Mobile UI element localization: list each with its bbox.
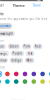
button[interactable]: Colour swatch xyxy=(0,71,2,77)
button[interactable]: Colour swatch xyxy=(31,78,37,85)
button[interactable]: Orange xyxy=(0,51,9,56)
button[interactable]: Indigo xyxy=(10,58,23,63)
staticText: ▮▮▮ xyxy=(37,0,40,1)
button[interactable]: Colour swatch xyxy=(4,71,11,77)
button[interactable]: Colour swatch xyxy=(4,78,11,85)
staticText: Green xyxy=(9,45,18,48)
button[interactable]: Colour swatch xyxy=(13,78,19,85)
staticText: Teal xyxy=(28,52,33,55)
staticText: Indigo xyxy=(11,59,21,62)
staticText: Yellow xyxy=(0,59,6,62)
staticText: Orange xyxy=(0,52,7,55)
staticText: Theme xyxy=(12,3,24,8)
button[interactable]: Colour swatch xyxy=(0,78,2,85)
staticText: Accent xyxy=(0,39,4,42)
button[interactable]: Purple xyxy=(11,51,24,56)
button[interactable]: Teal xyxy=(26,51,34,56)
button[interactable]: Colour swatch xyxy=(48,78,50,85)
button[interactable]: Mint xyxy=(25,58,34,63)
button[interactable]: Colour swatch xyxy=(39,71,46,77)
staticText: Red xyxy=(35,45,41,48)
button[interactable]: Blue xyxy=(0,44,6,49)
button[interactable]: Colour swatch xyxy=(13,71,19,77)
staticText: Cancel xyxy=(0,4,4,7)
button[interactable]: Done xyxy=(33,4,41,7)
staticText: Palette xyxy=(0,66,5,69)
button[interactable]: Yellow xyxy=(0,58,8,63)
button[interactable]: Pink xyxy=(22,44,31,49)
button[interactable]: Cancel xyxy=(0,4,4,7)
staticText: Pink xyxy=(24,45,30,48)
staticText: Blue xyxy=(0,45,4,48)
staticText: Done xyxy=(33,4,41,7)
staticText: Purple xyxy=(12,52,22,55)
staticText: Always Light xyxy=(0,32,13,35)
staticText: Automatic xyxy=(0,24,10,28)
button[interactable]: Colour swatch xyxy=(22,71,28,77)
staticText: Choose the appearance you like best xyxy=(0,17,47,21)
staticText: Style xyxy=(0,11,3,16)
button[interactable]: Always Light xyxy=(0,31,15,36)
staticText: 9:41 xyxy=(0,0,3,1)
staticText: Mint xyxy=(27,59,33,62)
button[interactable]: Colour swatch xyxy=(48,71,50,77)
button[interactable]: Colour swatch xyxy=(39,78,46,85)
button[interactable]: Colour swatch xyxy=(22,78,28,85)
button[interactable]: Colour swatch xyxy=(31,71,37,77)
button[interactable]: Red xyxy=(33,44,43,49)
button[interactable]: Automatic xyxy=(0,23,12,29)
button[interactable]: Green xyxy=(8,44,20,49)
